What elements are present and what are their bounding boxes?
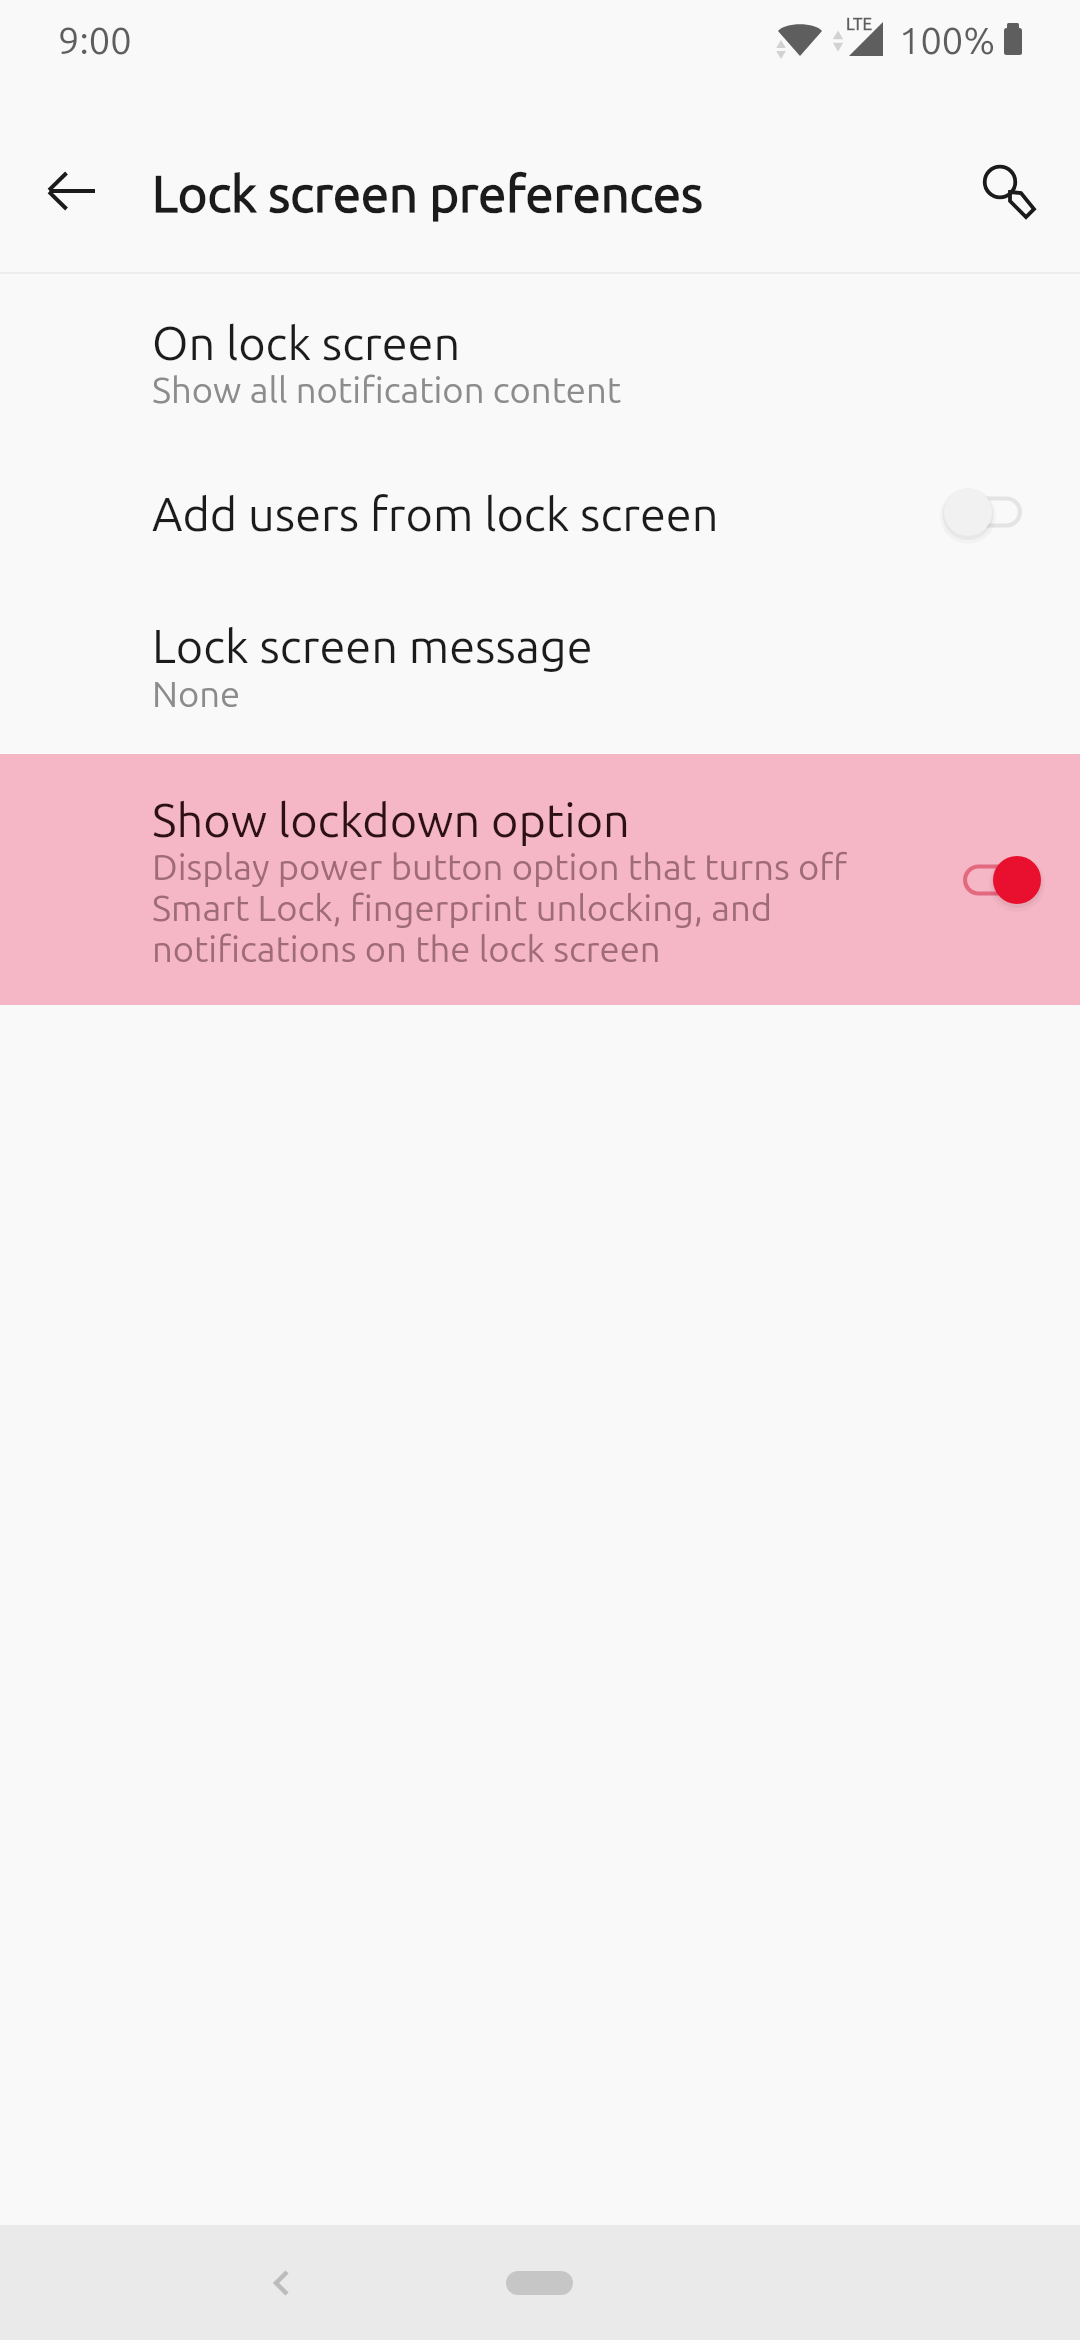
staticText: Show all notification content (152, 369, 622, 410)
button[interactable]: Home (506, 2271, 573, 2295)
staticText: Display power button option that turns o… (152, 846, 848, 887)
button[interactable]: Add users from lock screen (0, 414, 1080, 554)
staticText: On lock screen (152, 316, 461, 369)
button[interactable]: Show lockdown option (0, 754, 1080, 1005)
button[interactable]: Search (958, 140, 1046, 228)
staticText: 100% (899, 19, 996, 62)
staticText: None (152, 673, 241, 714)
button[interactable]: Back (240, 2243, 320, 2323)
staticText: notifications on the lock screen (152, 928, 661, 969)
staticText: Smart Lock, fingerprint unlocking, and (152, 887, 772, 928)
button[interactable]: On lock screen (0, 274, 1080, 414)
staticText: Add users from lock screen (152, 487, 719, 540)
staticText: Lock screen preferences (152, 165, 703, 222)
button[interactable]: Switch on (936, 838, 1044, 922)
button[interactable]: Lock screen message (0, 554, 1080, 754)
staticText: Lock screen message (152, 619, 593, 672)
button[interactable]: Switch off (941, 470, 1049, 554)
staticText: Show lockdown option (152, 793, 630, 846)
staticText: 9:00 (58, 19, 132, 62)
staticText: LTE (846, 14, 872, 33)
button[interactable]: Navigate up (28, 148, 116, 236)
